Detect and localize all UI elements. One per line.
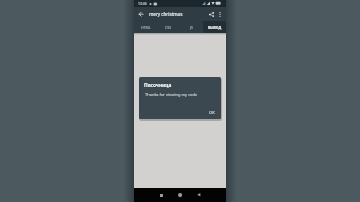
staticText: 13:36 — [138, 1, 147, 6]
staticText: Thanks for viewing my code — [145, 92, 198, 97]
staticText: JS — [190, 25, 193, 30]
button[interactable] — [216, 7, 224, 21]
staticText: CSS — [165, 25, 172, 30]
button[interactable]: CSS — [157, 21, 180, 33]
staticText: ВЫВОД — [208, 25, 222, 30]
staticText: mery christmas — [149, 11, 183, 17]
button[interactable]: JS — [180, 21, 203, 33]
button[interactable]: ВЫВОД — [203, 21, 226, 33]
staticText: HTML — [141, 25, 151, 30]
button[interactable] — [174, 188, 186, 202]
button[interactable] — [155, 188, 167, 202]
button[interactable] — [207, 7, 216, 21]
staticText: OK — [209, 110, 215, 115]
staticText: Песочница — [144, 82, 172, 89]
button[interactable]: OK — [204, 109, 221, 119]
button[interactable]: HTML — [134, 21, 157, 33]
button[interactable] — [134, 7, 148, 21]
button[interactable] — [193, 188, 205, 202]
